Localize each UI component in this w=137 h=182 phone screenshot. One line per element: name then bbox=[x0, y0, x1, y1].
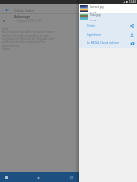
staticText: wolltest. Ich hoffe sie gefallen dir auc… bbox=[2, 34, 49, 38]
button[interactable]: Back bbox=[2, 5, 11, 14]
staticText: hier findest du die Bilder die du hier h… bbox=[2, 30, 55, 34]
button[interactable]: Teilen bbox=[79, 21, 137, 30]
staticText: Sunset.jpg bbox=[90, 5, 104, 9]
staticText: Teilen bbox=[87, 24, 96, 28]
staticText: 41 KB bbox=[90, 10, 97, 13]
button[interactable]: In MEGA Cloud sichern bbox=[79, 38, 137, 47]
button[interactable]: Back bbox=[32, 172, 44, 182]
staticText: 3. August 2016 12:43 bbox=[16, 19, 42, 23]
staticText: 76 KB bbox=[90, 18, 97, 21]
staticText: melde dich einfach nochmal bei mir. bbox=[2, 40, 46, 44]
staticText: Speichern bbox=[87, 33, 102, 37]
button[interactable]: Hide keyboard bbox=[0, 172, 12, 182]
staticText: 12:43 bbox=[129, 0, 136, 4]
staticText: Tobias bbox=[2, 47, 10, 51]
staticText: Tobias Seibel bbox=[14, 8, 35, 12]
button[interactable]: Tobi.jpg bbox=[79, 12, 137, 21]
button[interactable]: Sunset.jpg bbox=[79, 4, 137, 13]
staticText: Tobi.jpg bbox=[90, 13, 101, 17]
staticText: In MEGA Cloud sichern bbox=[87, 41, 120, 45]
staticText: Liebe Gruesse bbox=[2, 44, 20, 48]
button[interactable]: Speichern bbox=[79, 30, 137, 39]
button[interactable]: Home bbox=[65, 172, 77, 182]
staticText: so gut wie mir. Wenn du die Originale wi… bbox=[2, 37, 55, 41]
staticText: Hallo, bbox=[2, 27, 9, 31]
staticText: Anhaenge bbox=[14, 15, 31, 19]
